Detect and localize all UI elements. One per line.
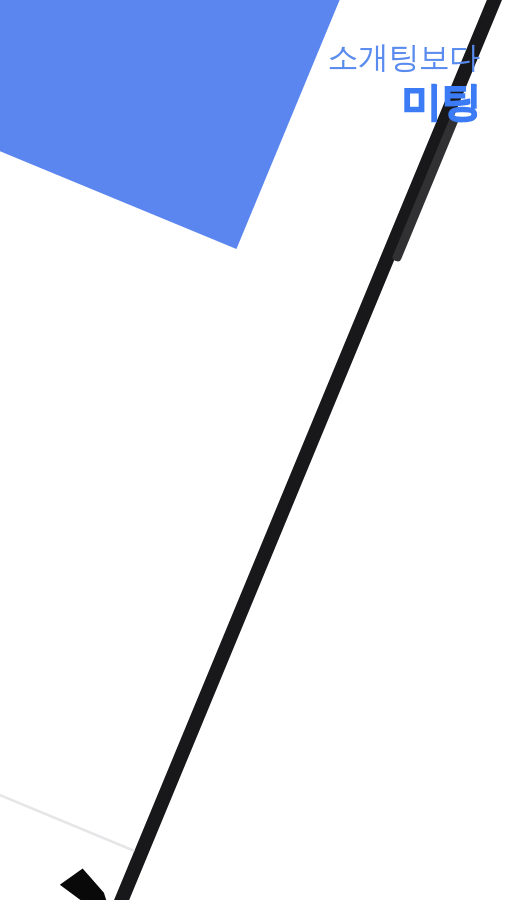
button[interactable]: 소개팅보다: [328, 38, 480, 127]
staticText: 미팅: [401, 77, 480, 127]
staticText: 소개팅보다: [328, 38, 480, 77]
